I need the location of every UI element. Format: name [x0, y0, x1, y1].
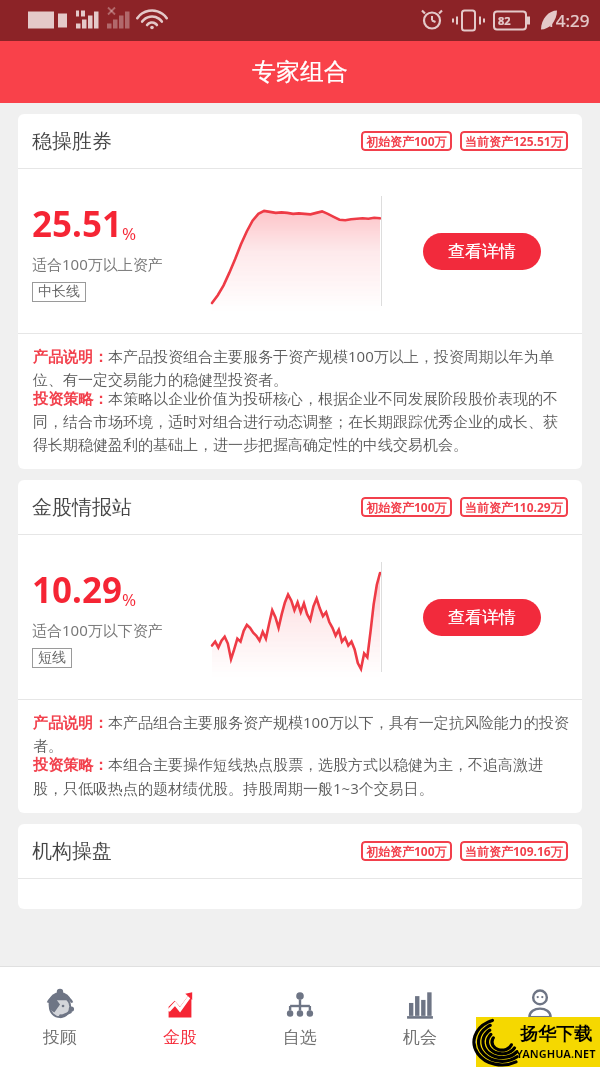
staticText: 适合100万以上资产 — [32, 254, 163, 274]
staticText: 查看详情 — [448, 607, 516, 628]
staticText: 中长线 — [38, 283, 80, 301]
button[interactable]: 当前资产110.29万 — [460, 497, 568, 517]
staticText: 初始资产100万 — [366, 843, 447, 859]
staticText: 10.29 — [32, 566, 122, 614]
staticText: 适合100万以下资产 — [32, 620, 163, 640]
staticText: 短线 — [38, 649, 66, 667]
staticText: % — [122, 222, 137, 245]
button[interactable]: 投顾 — [0, 967, 120, 1067]
staticText: 投资策略：本策略以企业价值为投研核心，根据企业不同发展阶段股价表现的不同，结合市… — [33, 390, 569, 455]
button[interactable]: 机构操盘 — [18, 824, 582, 909]
staticText: 投资策略：本组合主要操作短线热点股票，选股方式以稳健为主，不追高激进股，只低吸热… — [33, 756, 569, 799]
staticText: 机构操盘 — [32, 839, 112, 864]
button[interactable]: 金股情报站 — [18, 480, 582, 813]
button[interactable]: 初始资产100万 — [361, 841, 452, 861]
button[interactable]: 当前资产109.16万 — [460, 841, 568, 861]
staticText: 机会 — [403, 1027, 437, 1048]
button[interactable]: 初始资产100万 — [361, 497, 452, 517]
button[interactable]: 金股 — [120, 967, 240, 1067]
staticText: 自选 — [283, 1027, 317, 1048]
button[interactable]: 机会 — [360, 967, 480, 1067]
staticText: 金股 — [163, 1027, 197, 1048]
staticText: 14:29 — [546, 9, 590, 32]
button[interactable]: 我的 — [480, 967, 600, 1067]
staticText: 产品说明：本产品组合主要服务资产规模100万以下，具有一定抗风险能力的投资者。 — [33, 712, 569, 756]
staticText: 当前资产109.16万 — [465, 843, 563, 859]
staticText: 当前资产125.51万 — [465, 133, 563, 149]
button[interactable]: 查看详情 — [423, 233, 541, 270]
staticText: 投顾 — [43, 1027, 77, 1048]
staticText: 稳操胜券 — [32, 129, 112, 154]
staticText: 专家组合 — [252, 57, 348, 87]
button[interactable]: 自选 — [240, 967, 360, 1067]
staticText: 82 — [498, 13, 511, 28]
staticText: 25.51 — [32, 200, 122, 248]
staticText: 查看详情 — [448, 241, 516, 262]
button[interactable]: 初始资产100万 — [361, 131, 452, 151]
staticText: 产品说明：本产品投资组合主要服务于资产规模100万以上，投资周期以年为单位、有一… — [33, 346, 569, 390]
staticText: 当前资产110.29万 — [465, 499, 563, 515]
staticText: 初始资产100万 — [366, 133, 447, 149]
button[interactable]: 查看详情 — [423, 599, 541, 636]
staticText: 金股情报站 — [32, 495, 132, 520]
staticText: 初始资产100万 — [366, 499, 447, 515]
staticText: 扬华下载 — [520, 1023, 592, 1046]
staticText: % — [122, 588, 137, 611]
button[interactable]: 稳操胜券 — [18, 114, 582, 469]
staticText: YANGHUA.NET — [516, 1046, 596, 1061]
button[interactable]: 当前资产125.51万 — [460, 131, 568, 151]
